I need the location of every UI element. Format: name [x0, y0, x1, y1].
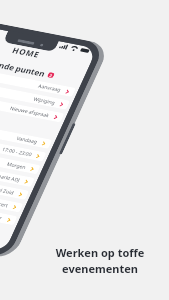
staticText: 2 — [47, 72, 55, 79]
button[interactable]: Vandaag — [0, 72, 55, 193]
staticText: Concert — [0, 192, 12, 216]
button[interactable]: Wijziging — [0, 32, 73, 154]
staticText: Vandaag — [13, 128, 41, 153]
button[interactable]: Nieuwe afspraak — [0, 45, 67, 167]
staticText: 17:00 - 23:00 — [0, 135, 35, 169]
staticText: Openstaande punten — [0, 22, 51, 109]
staticText: Aanvraag — [35, 75, 64, 102]
staticText: Theater — [0, 205, 6, 229]
button[interactable]: Jaarmarkt ADJ — [0, 110, 38, 232]
staticText: Werken op toffe evenementen — [41, 245, 159, 276]
staticText: Festival Zuid — [0, 174, 18, 207]
button[interactable]: Theater — [0, 148, 20, 270]
button[interactable]: Aanvraag — [0, 20, 79, 142]
button[interactable]: Festival Zuid — [0, 122, 32, 244]
staticText: Morgen — [4, 154, 29, 178]
staticText: Nieuwe afspraak — [7, 91, 53, 134]
button[interactable]: Concert — [0, 135, 26, 257]
staticText: HOME — [0, 0, 95, 116]
button[interactable]: Morgen — [0, 97, 44, 219]
button[interactable]: 17:00 - 23:00 — [0, 84, 49, 206]
staticText: Jaarmarkt ADJ — [0, 159, 23, 196]
staticText: Wijziging — [30, 88, 59, 114]
other: Status — [58, 32, 93, 65]
